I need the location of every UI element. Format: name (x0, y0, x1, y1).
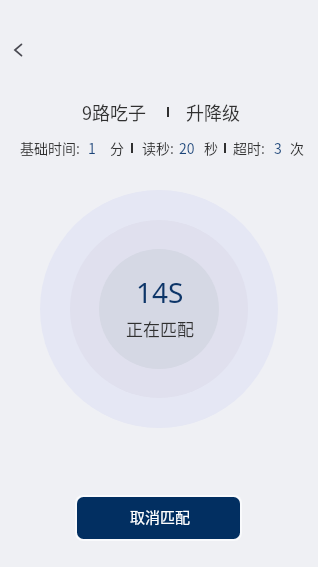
staticText: 秒 (204, 138, 218, 158)
button[interactable]: 取消匹配 (77, 497, 240, 539)
staticText: 正在匹配 (126, 316, 194, 341)
staticText: 升降级 (186, 99, 240, 125)
staticText: 1 (88, 138, 96, 158)
staticText: 9路吃子 (82, 99, 146, 125)
staticText: 分 (110, 138, 124, 158)
button[interactable]: Back (1, 34, 33, 66)
staticText: 读秒: (142, 138, 174, 158)
staticText: 取消匹配 (130, 506, 191, 528)
staticText: 20 (179, 138, 195, 158)
staticText: 超时: (233, 138, 265, 158)
staticText: 次 (290, 138, 304, 158)
staticText: 14S (136, 273, 184, 311)
staticText: 3 (274, 138, 282, 158)
staticText: 基础时间: (20, 138, 80, 158)
